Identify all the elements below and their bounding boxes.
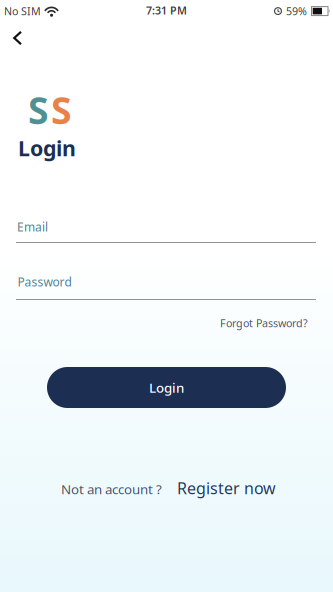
staticText: Password	[17, 274, 71, 290]
staticText: Register now	[177, 477, 276, 499]
staticText: Login	[149, 379, 184, 396]
button[interactable]: Forgot Password?	[220, 316, 333, 330]
staticText: Email	[17, 219, 48, 235]
staticText: S	[51, 85, 72, 134]
staticText: 7:31 PM	[146, 3, 187, 18]
staticText: No SIM	[4, 4, 41, 18]
staticText: S	[28, 85, 49, 134]
staticText: 59%	[286, 4, 307, 18]
staticText: Login	[18, 134, 76, 162]
button[interactable]: Back	[0, 23, 40, 53]
button[interactable]: Login	[47, 367, 286, 408]
staticText: Not an account ?	[61, 480, 162, 498]
button[interactable]: Register now	[177, 477, 276, 499]
staticText: Forgot Password?	[220, 316, 308, 330]
